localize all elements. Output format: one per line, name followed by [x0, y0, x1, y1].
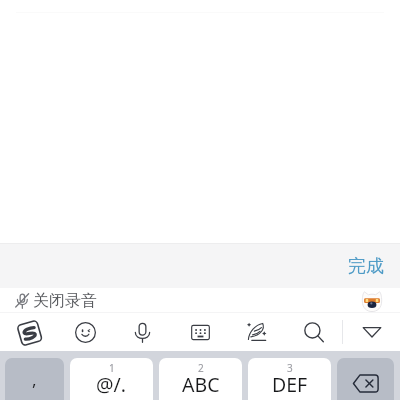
staticText: 完成	[348, 255, 384, 278]
button[interactable]: 关闭录音	[0, 288, 105, 313]
button[interactable]: Keyboard	[184, 313, 216, 351]
staticText: 2	[198, 361, 204, 375]
button[interactable]: ,	[5, 358, 64, 400]
staticText: DEF	[272, 371, 308, 398]
button[interactable]: 1	[70, 358, 153, 400]
button[interactable]: Assistant avatar	[361, 290, 383, 312]
button[interactable]: Hide keyboard	[356, 313, 388, 351]
button[interactable]: 完成	[330, 246, 400, 285]
button[interactable]: Voice input	[126, 313, 158, 351]
button[interactable]: Sogou input	[13, 313, 45, 351]
staticText: 3	[287, 361, 293, 375]
staticText: ABC	[182, 371, 220, 398]
button[interactable]: Emoji	[69, 313, 101, 351]
button[interactable]: AI writing	[241, 313, 273, 351]
button[interactable]: 2	[159, 358, 242, 400]
staticText: ,	[32, 368, 37, 391]
button[interactable]	[337, 358, 394, 400]
staticText: @/.	[96, 371, 127, 398]
staticText: 关闭录音	[33, 291, 97, 311]
button[interactable]: 3	[248, 358, 331, 400]
staticText: 1	[109, 361, 115, 375]
button[interactable]: Search	[298, 313, 330, 351]
